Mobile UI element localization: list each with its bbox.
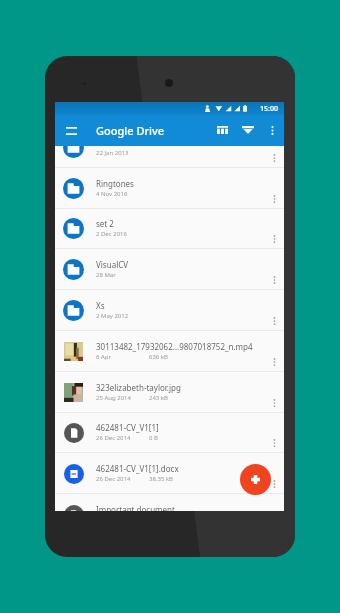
button[interactable]: Sort	[236, 118, 260, 142]
button[interactable]: set 2	[55, 208, 284, 249]
staticText: Ringtones	[96, 178, 134, 189]
staticText: set 2	[96, 218, 114, 229]
staticText: 462481-CV_V1[1]	[96, 422, 159, 433]
staticText: 25 Aug 2014	[96, 394, 149, 402]
button[interactable]: Create new	[240, 464, 271, 495]
staticText: 15:00	[260, 104, 278, 114]
button[interactable]: Row options	[267, 412, 284, 452]
button[interactable]: Row options	[267, 208, 284, 248]
staticText: 22 Jan 2013	[96, 149, 129, 157]
button[interactable]: Row options	[267, 249, 284, 289]
staticText: 243 kB	[149, 394, 168, 402]
staticText: 636 kB	[149, 353, 168, 361]
button[interactable]: 30113482_17932062...9807018752_n.mp4	[55, 331, 284, 372]
button[interactable]: Important document	[55, 494, 284, 511]
button[interactable]: Row options	[267, 290, 284, 330]
staticText: 26 Dec 2014	[96, 434, 149, 442]
staticText: Alarms	[96, 137, 123, 148]
button[interactable]: Xs	[55, 290, 284, 331]
staticText: 0 B	[149, 434, 158, 442]
button[interactable]: Navigation menu	[59, 119, 83, 143]
staticText: Important document	[96, 504, 175, 511]
staticText: 38.35 kB	[149, 475, 174, 483]
staticText: 2 Dec 2016	[96, 230, 127, 238]
button[interactable]: Row options	[267, 372, 284, 412]
staticText: 323elizabeth-taylor.jpg	[96, 382, 181, 393]
button[interactable]: Row options	[267, 127, 284, 167]
button[interactable]: VisualCV	[55, 249, 284, 290]
staticText: Xs	[96, 300, 105, 311]
button[interactable]: 323elizabeth-taylor.jpg	[55, 372, 284, 413]
button[interactable]: Alarms	[55, 127, 284, 168]
staticText: VisualCV	[96, 259, 129, 270]
staticText: 462481-CV_V1[1].docx	[96, 463, 179, 474]
staticText: 2 May 2012	[96, 312, 129, 320]
staticText: 26 Dec 2014	[96, 475, 149, 483]
button[interactable]: 462481-CV_V1[1].docx	[55, 453, 284, 494]
staticText: 28 Mar	[96, 271, 116, 279]
button[interactable]: Ringtones	[55, 168, 284, 209]
staticText: Google Drive	[96, 123, 165, 138]
button[interactable]: 462481-CV_V1[1]	[55, 412, 284, 453]
button[interactable]: Switch to grid view	[210, 118, 234, 142]
staticText: 6 Apr	[96, 353, 149, 361]
button[interactable]: Row options	[267, 331, 284, 371]
button[interactable]: Row options	[267, 168, 284, 208]
button[interactable]: Row options	[267, 453, 284, 493]
button[interactable]: More options	[260, 118, 284, 142]
staticText: 4 Nov 2016	[96, 190, 128, 198]
staticText: 30113482_17932062...9807018752_n.mp4	[96, 341, 253, 352]
